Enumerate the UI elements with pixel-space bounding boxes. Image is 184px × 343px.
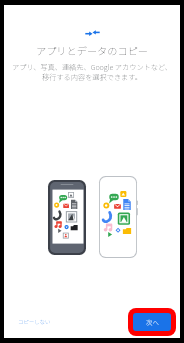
staticText: コピーしない <box>18 318 51 326</box>
staticText: アプリ、写真、連絡先、Google アカウントなど、 移行する内容を選択できます… <box>4 62 180 82</box>
button[interactable]: 次へ <box>133 313 171 331</box>
staticText: アプリとデータのコピー <box>4 43 180 58</box>
staticText: 次へ <box>146 318 159 327</box>
button[interactable]: コピーしない <box>8 313 61 331</box>
